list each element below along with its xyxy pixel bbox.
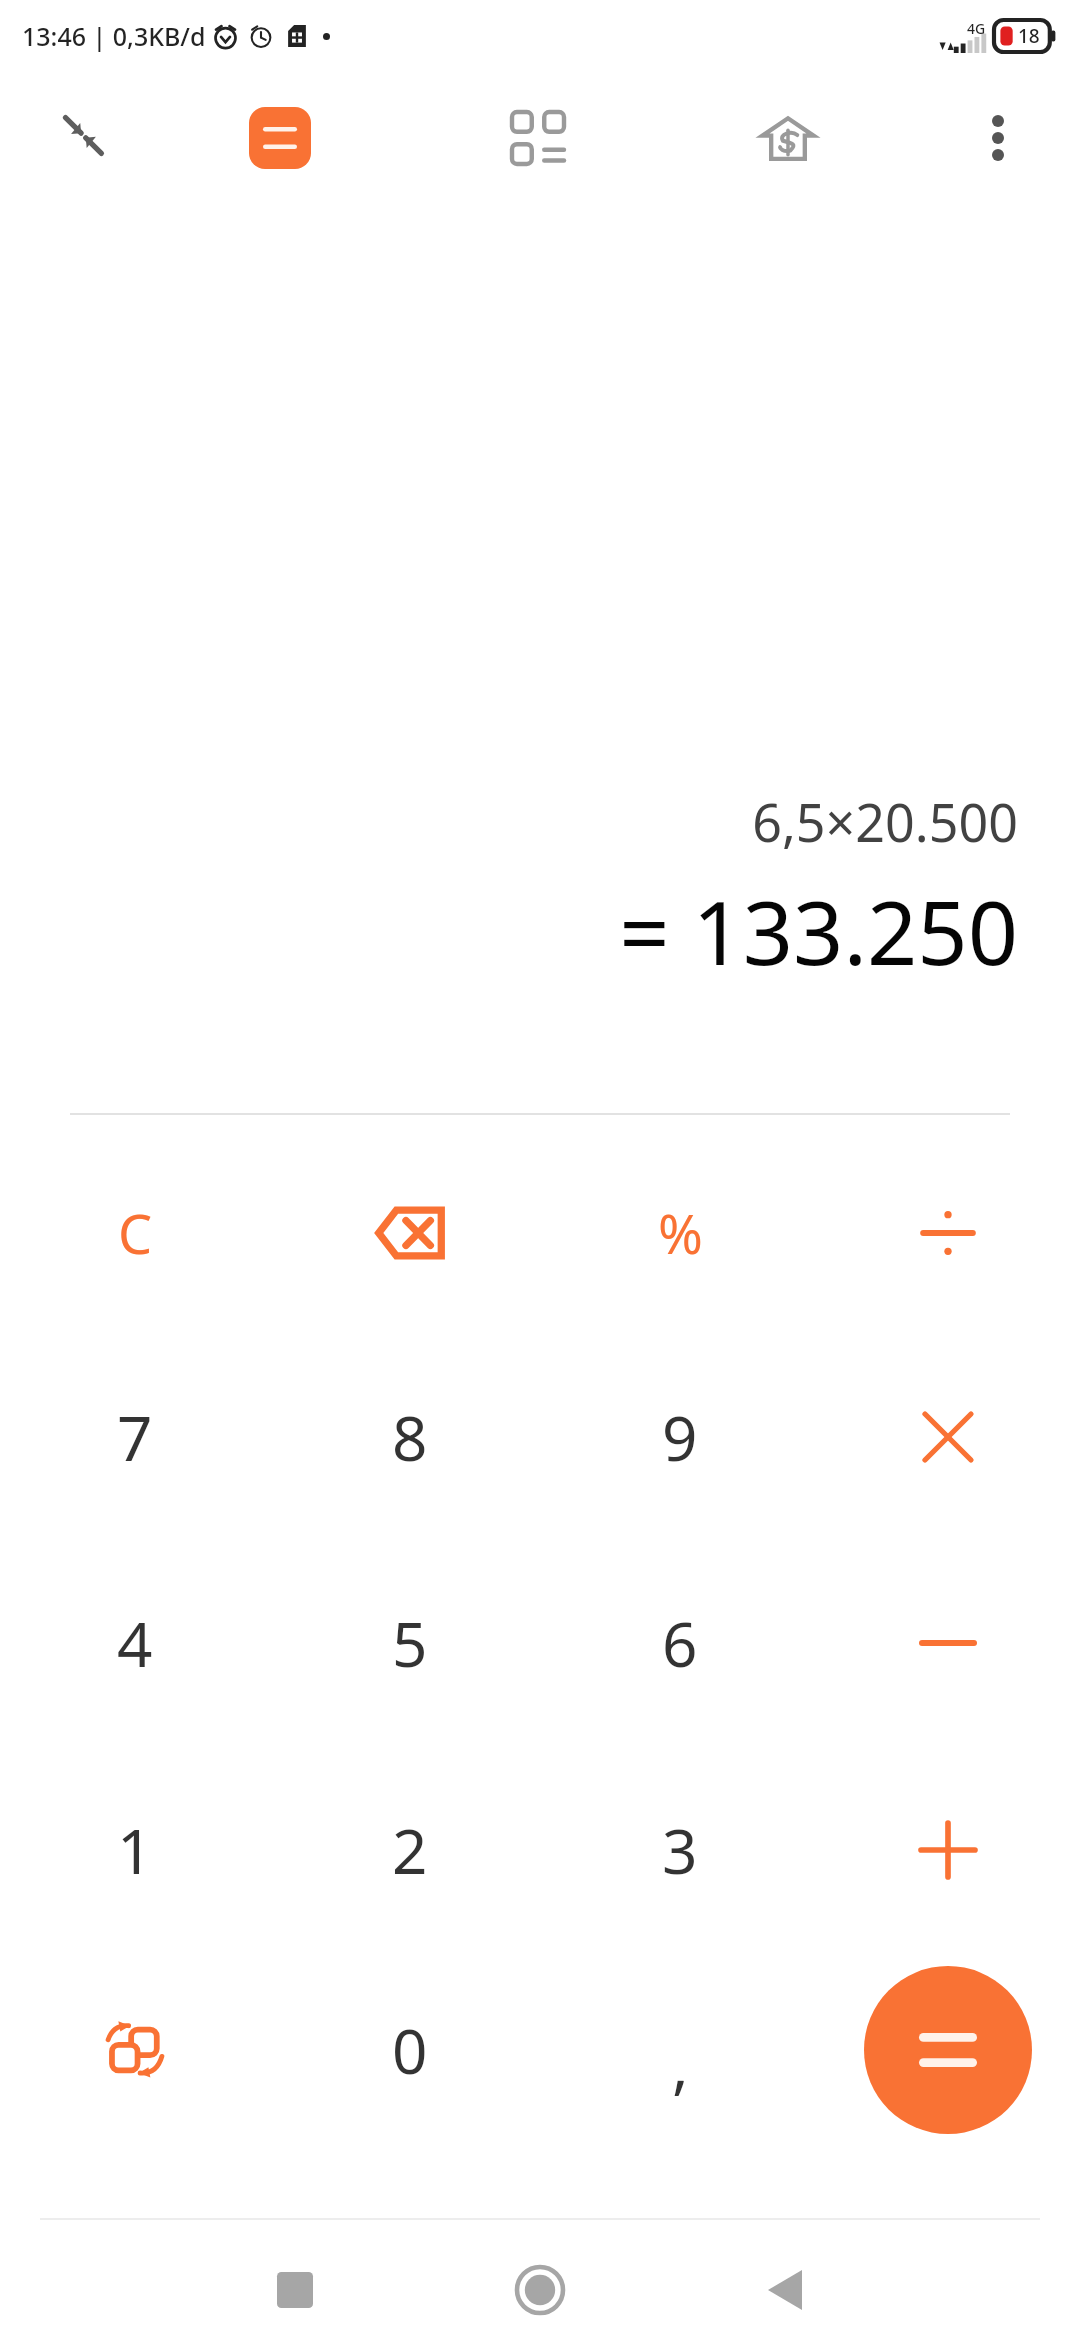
button[interactable]: 6: [555, 1545, 805, 1741]
button[interactable]: Backspace: [285, 1135, 535, 1331]
staticText: 13:46 | 0,3KB/d: [22, 19, 206, 53]
staticText: 4G: [967, 19, 986, 38]
button[interactable]: ,: [555, 1952, 805, 2148]
staticText: ,: [672, 2022, 689, 2106]
button[interactable]: C: [10, 1135, 260, 1331]
button[interactable]: Calculator: [232, 90, 328, 186]
staticText: 6: [662, 1601, 698, 1685]
button[interactable]: Divide: [823, 1135, 1073, 1331]
button[interactable]: Recent apps: [240, 2240, 350, 2340]
button[interactable]: 4: [10, 1545, 260, 1741]
button[interactable]: Mortgage: [740, 90, 836, 186]
staticText: C: [118, 1196, 153, 1270]
button[interactable]: %: [555, 1135, 805, 1331]
staticText: 18: [1018, 23, 1040, 49]
staticText: 9: [662, 1395, 698, 1479]
staticText: 0: [392, 2008, 428, 2092]
button[interactable]: 7: [10, 1339, 260, 1535]
button[interactable]: Multiply: [823, 1339, 1073, 1535]
button[interactable]: 0: [285, 1952, 535, 2148]
button[interactable]: Home: [485, 2240, 595, 2340]
button[interactable]: All tools: [490, 90, 586, 186]
staticText: 4: [117, 1601, 153, 1685]
staticText: 1: [117, 1808, 153, 1892]
button[interactable]: 1: [10, 1752, 260, 1948]
button[interactable]: Back: [730, 2240, 840, 2340]
staticText: 5: [392, 1601, 428, 1685]
staticText: 3: [662, 1808, 698, 1892]
button[interactable]: Unit converter: [10, 1952, 260, 2148]
staticText: 7: [117, 1395, 153, 1479]
button[interactable]: Collapse: [38, 90, 128, 180]
button[interactable]: More options: [950, 90, 1046, 186]
staticText: = 133.250: [619, 871, 1018, 991]
button[interactable]: 8: [285, 1339, 535, 1535]
staticText: 6,5×20.500: [752, 786, 1018, 857]
button[interactable]: 5: [285, 1545, 535, 1741]
staticText: 2: [392, 1808, 428, 1892]
staticText: %: [658, 1196, 703, 1270]
button[interactable]: Equals: [864, 1966, 1032, 2134]
staticText: 8: [392, 1395, 428, 1479]
button[interactable]: Add: [823, 1752, 1073, 1948]
button[interactable]: 9: [555, 1339, 805, 1535]
button[interactable]: 3: [555, 1752, 805, 1948]
button[interactable]: Subtract: [823, 1545, 1073, 1741]
button[interactable]: 2: [285, 1752, 535, 1948]
